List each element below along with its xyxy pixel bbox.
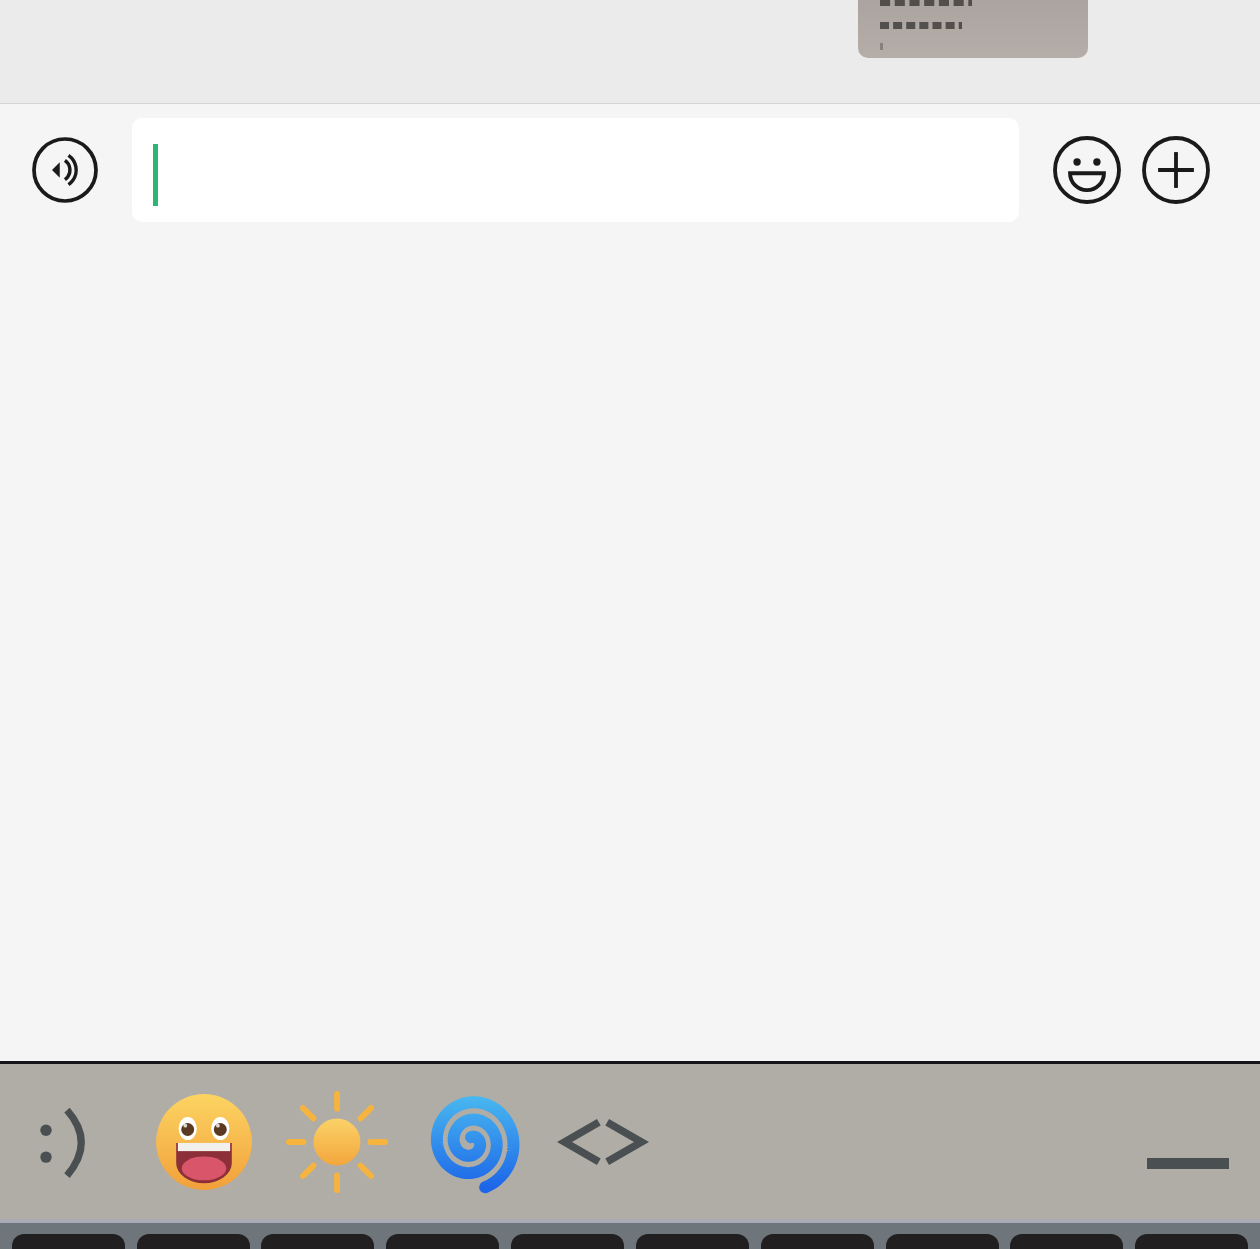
button[interactable]: Key [636, 1234, 749, 1249]
button[interactable]: Key [761, 1234, 874, 1249]
button[interactable]: Emoji [1052, 135, 1122, 205]
button[interactable]: Key [12, 1234, 125, 1249]
button[interactable]: More [1141, 135, 1211, 205]
button[interactable]: Voice input [31, 136, 99, 204]
button[interactable]: Key [137, 1234, 250, 1249]
button[interactable]: Angle brackets [551, 1090, 655, 1194]
button[interactable]: Key [261, 1234, 374, 1249]
button[interactable]: Key [1010, 1234, 1123, 1249]
button[interactable]: Sun emoji [287, 1092, 387, 1192]
button[interactable] [132, 118, 1019, 222]
button[interactable]: Cyclone emoji [419, 1090, 523, 1194]
button[interactable]: Key [511, 1234, 624, 1249]
button[interactable]: Key [386, 1234, 499, 1249]
button[interactable]: Collapse [1136, 1090, 1240, 1194]
button[interactable]: Key [1135, 1234, 1248, 1249]
button[interactable]: Smiley text [25, 1100, 109, 1184]
button[interactable] [858, 0, 1088, 58]
button[interactable]: Grinning face emoji [153, 1091, 255, 1193]
button[interactable]: Key [886, 1234, 999, 1249]
